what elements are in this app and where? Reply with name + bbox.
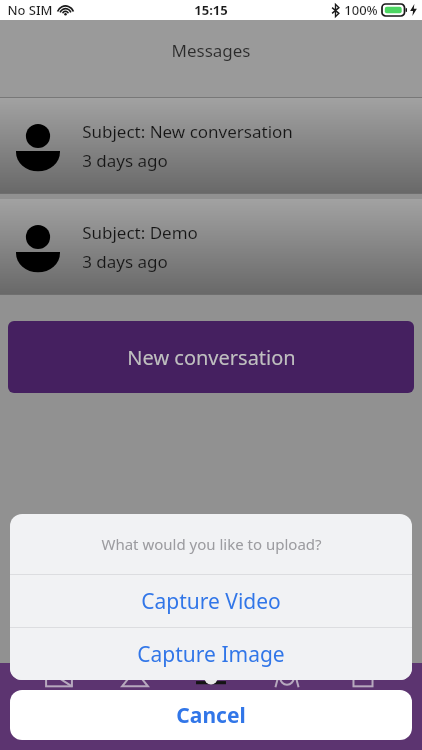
button[interactable]: New conversation — [8, 321, 414, 393]
staticText: 100% — [344, 1, 378, 19]
staticText: Cancel — [176, 701, 246, 730]
button[interactable]: Capture Video — [10, 575, 412, 627]
button[interactable]: Subject: New conversation — [0, 98, 422, 194]
staticText: Messages — [171, 39, 251, 62]
staticText: Subject: New conversation — [82, 120, 293, 143]
staticText: No SIM — [7, 1, 53, 19]
staticText: New conversation — [127, 344, 296, 371]
staticText: Capture Image — [137, 640, 285, 669]
button[interactable]: Cancel — [10, 690, 412, 740]
button[interactable]: Capture Image — [10, 628, 412, 680]
staticText: 3 days ago — [82, 149, 168, 172]
staticText: 15:15 — [194, 1, 228, 19]
staticText: 3 days ago — [82, 250, 168, 273]
staticText: Subject: Demo — [82, 221, 198, 244]
button[interactable]: Subject: Demo — [0, 199, 422, 295]
staticText: Capture Video — [141, 587, 281, 616]
staticText: What would you like to upload? — [101, 534, 322, 554]
